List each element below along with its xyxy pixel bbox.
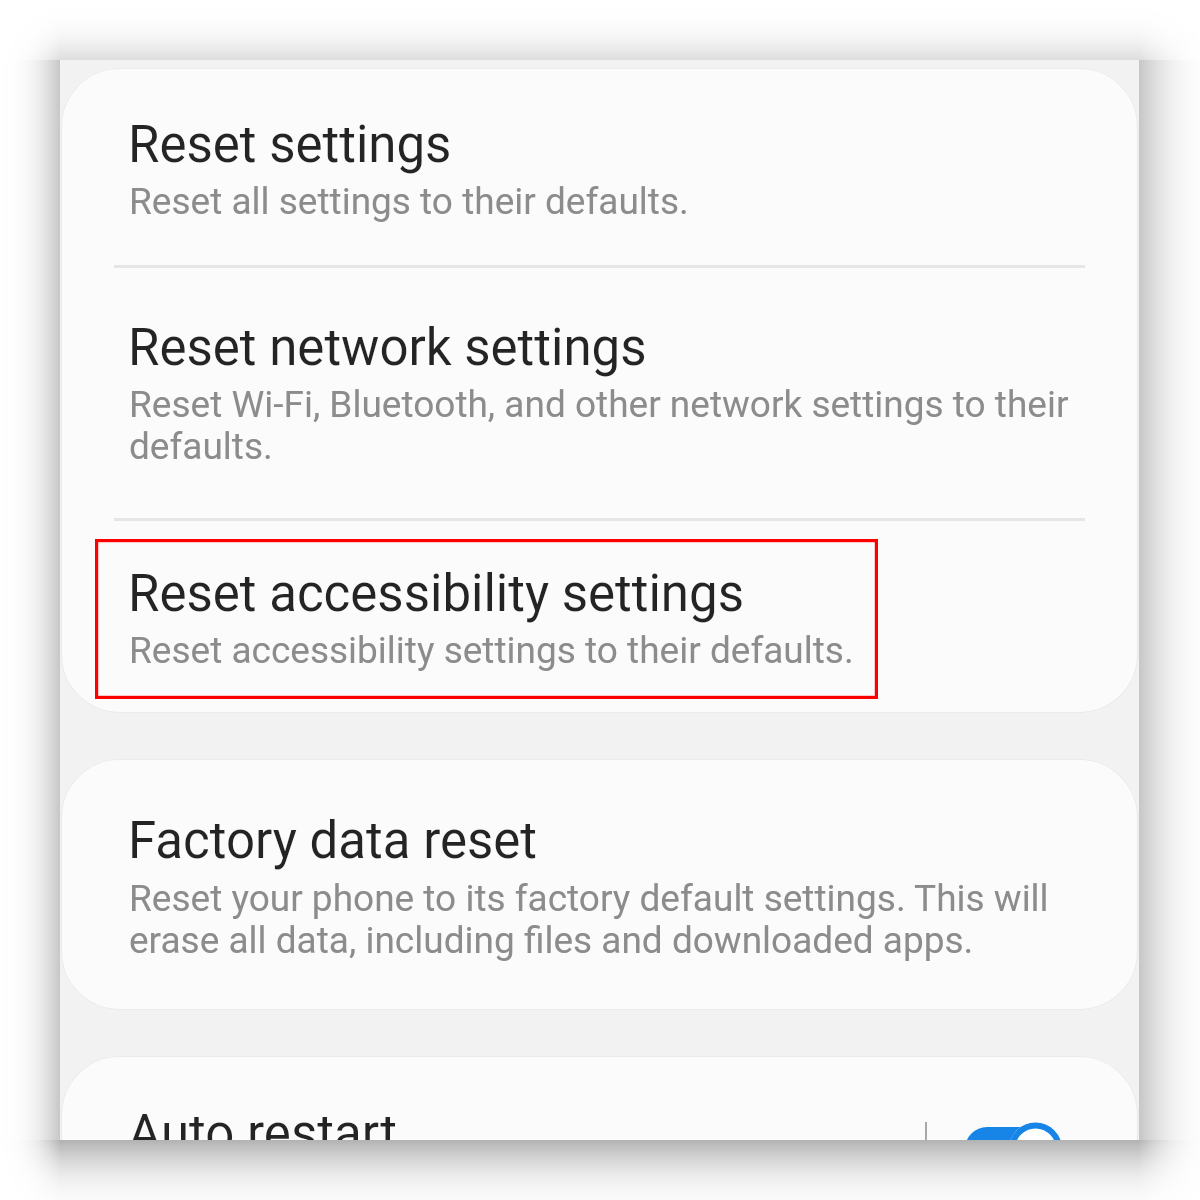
staticText: Reset your phone to its factory default … (129, 878, 1083, 962)
staticText: Reset accessibility settings to their de… (129, 630, 1083, 672)
staticText: Auto restart (128, 1103, 397, 1140)
button[interactable]: Reset settings (61, 68, 1138, 265)
button[interactable]: Factory data reset (61, 759, 1138, 1010)
staticText: Reset Wi-Fi, Bluetooth, and other networ… (129, 384, 1083, 468)
staticText: Reset accessibility settings (128, 563, 744, 623)
staticText: Reset all settings to their defaults. (129, 181, 1083, 223)
staticText: Reset network settings (128, 317, 647, 377)
button[interactable]: Reset network settings (61, 265, 1138, 518)
other: Auto restart, on (965, 1100, 1070, 1140)
button[interactable]: Auto restart (61, 1056, 1138, 1140)
button[interactable]: Reset accessibility settings (61, 518, 1138, 713)
staticText: Reset settings (128, 114, 452, 174)
staticText: Factory data reset (128, 810, 538, 870)
